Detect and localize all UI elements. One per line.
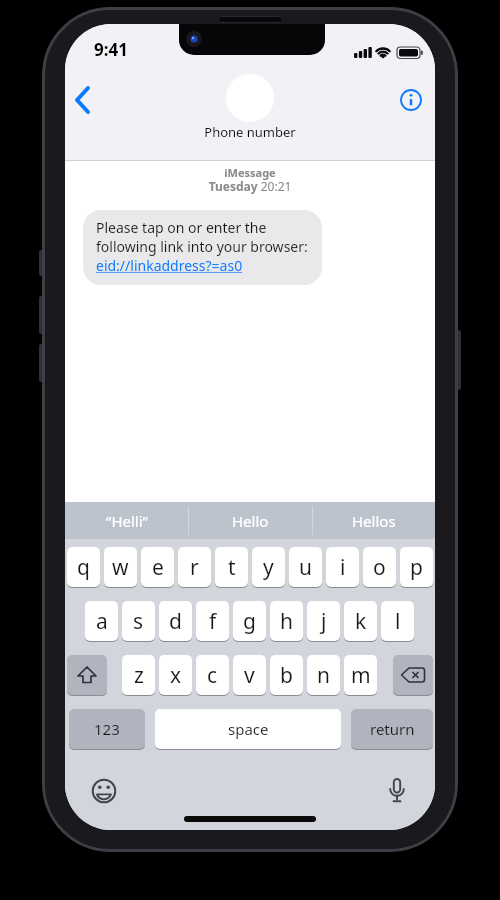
button[interactable]: c <box>196 655 229 695</box>
staticText: p <box>410 553 423 582</box>
staticText: a <box>96 607 108 636</box>
button[interactable]: n <box>307 655 340 695</box>
staticText: u <box>299 553 312 582</box>
button[interactable]: y <box>252 547 285 587</box>
button[interactable]: i <box>326 547 359 587</box>
staticText: f <box>209 607 217 636</box>
button[interactable]: space <box>155 709 341 749</box>
staticText: x <box>170 661 182 690</box>
staticText: 9:41 <box>94 38 128 61</box>
button[interactable]: m <box>344 655 377 695</box>
staticText: o <box>373 553 386 582</box>
staticText: Tuesday 20:21 <box>65 178 435 194</box>
button[interactable]: t <box>215 547 248 587</box>
button[interactable]: Hello <box>188 502 312 539</box>
button[interactable] <box>400 89 422 111</box>
staticText: q <box>77 553 90 582</box>
button[interactable]: h <box>270 601 303 641</box>
button[interactable]: return <box>351 709 433 749</box>
staticText: return <box>370 719 415 739</box>
button[interactable]: f <box>196 601 229 641</box>
staticText: l <box>395 607 401 636</box>
staticText: b <box>280 661 293 690</box>
staticText: n <box>317 661 330 690</box>
staticText: v <box>244 661 255 690</box>
button[interactable]: p <box>400 547 433 587</box>
button[interactable]: b <box>270 655 303 695</box>
staticText: m <box>351 661 371 690</box>
button[interactable]: x <box>159 655 192 695</box>
staticText: t <box>228 553 236 582</box>
staticText: r <box>190 553 199 582</box>
button[interactable]: a <box>85 601 118 641</box>
button[interactable]: “Helli” <box>65 502 188 539</box>
staticText: space <box>228 719 269 739</box>
button[interactable] <box>91 778 117 804</box>
button[interactable] <box>67 655 107 695</box>
staticText: 123 <box>94 719 120 739</box>
button[interactable]: Please tap on or enter the following lin… <box>96 218 308 275</box>
staticText: Phone number <box>65 123 435 141</box>
staticText: c <box>207 661 218 690</box>
staticText: iMessage <box>65 165 435 180</box>
staticText: Hellos <box>352 511 396 531</box>
button[interactable] <box>393 655 433 695</box>
button[interactable]: w <box>104 547 137 587</box>
staticText: d <box>169 607 182 636</box>
button[interactable]: r <box>178 547 211 587</box>
button[interactable] <box>389 778 405 806</box>
staticText: z <box>134 661 144 690</box>
button[interactable]: q <box>67 547 100 587</box>
staticText: w <box>112 553 129 582</box>
button[interactable]: v <box>233 655 266 695</box>
button[interactable] <box>74 86 92 114</box>
button[interactable]: e <box>141 547 174 587</box>
staticText: Hello <box>232 511 269 531</box>
button[interactable] <box>226 74 274 122</box>
button[interactable]: Hellos <box>312 502 435 539</box>
staticText: k <box>355 607 367 636</box>
staticText: g <box>243 607 256 636</box>
button[interactable]: g <box>233 601 266 641</box>
staticText: s <box>133 607 144 636</box>
button[interactable]: s <box>122 601 155 641</box>
button[interactable]: j <box>307 601 340 641</box>
staticText: h <box>280 607 293 636</box>
staticText: “Helli” <box>106 511 148 531</box>
button[interactable]: 123 <box>69 709 145 749</box>
staticText: e <box>152 553 164 582</box>
button[interactable]: u <box>289 547 322 587</box>
button[interactable]: z <box>122 655 155 695</box>
button[interactable]: k <box>344 601 377 641</box>
button[interactable]: l <box>381 601 414 641</box>
button[interactable]: d <box>159 601 192 641</box>
staticText: y <box>263 553 274 582</box>
staticText: j <box>321 607 327 636</box>
button[interactable]: o <box>363 547 396 587</box>
staticText: i <box>340 553 346 582</box>
